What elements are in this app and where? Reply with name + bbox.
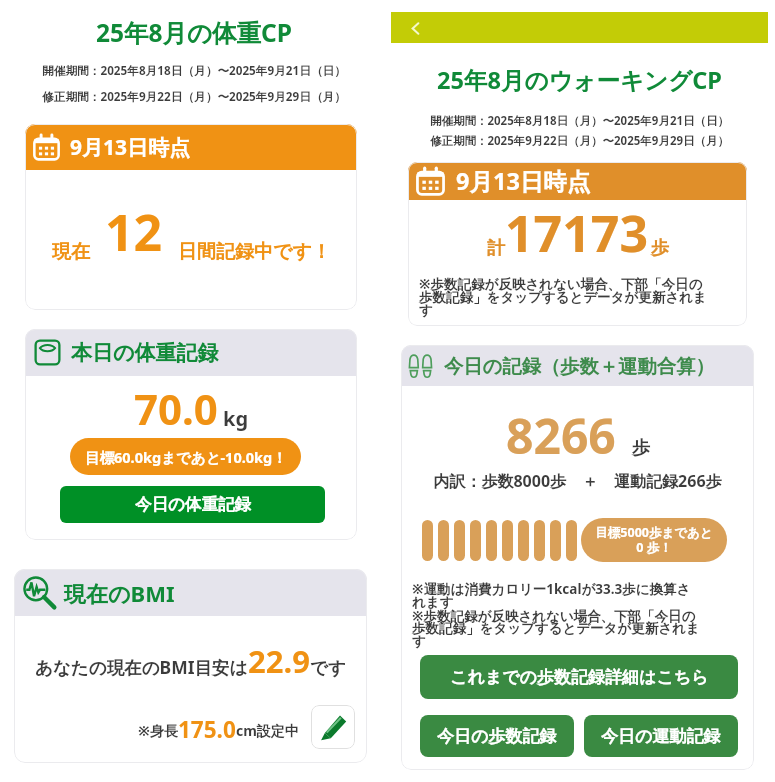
staticText: cm設定中: [236, 721, 299, 740]
staticText: 今日の運動記録: [601, 726, 721, 747]
staticText: 今日の歩数記録: [437, 726, 557, 747]
staticText: 内訳：歩数8000歩 ＋ 運動記録266歩: [401, 470, 754, 492]
staticText: 今日の体重記録: [135, 494, 251, 515]
staticText: 目標60.0kgまであと-10.0kg！: [85, 447, 287, 467]
staticText: 70.0: [134, 380, 218, 437]
staticText: ※運動は消費カロリー1kcalが33.3歩に換算されます ※歩数記録が反映されな…: [412, 580, 704, 650]
staticText: 25年8月のウォーキングCP: [391, 64, 768, 96]
staticText: 日間記録中です！: [178, 240, 331, 264]
staticText: 歩: [651, 237, 669, 260]
staticText: 今日の記録（歩数＋運動合算）: [444, 354, 715, 378]
staticText: 開催期間：2025年8月18日（月）〜2025年9月21日（日）: [5, 62, 383, 78]
staticText: ※歩数記録が反映されない場合、下部「今日の歩数記録」をタップするとデータが更新さ…: [419, 275, 711, 319]
staticText: kg: [223, 405, 249, 432]
staticText: 計: [487, 237, 505, 260]
button[interactable]: 今日の体重記録: [60, 486, 325, 523]
button[interactable]: これまでの歩数記録詳細はこちら: [420, 655, 738, 699]
staticText: 目標5000歩まであと 0 歩！: [581, 524, 727, 556]
staticText: 25年8月の体重CP: [5, 16, 383, 49]
staticText: ※身長: [138, 721, 178, 740]
staticText: 9月13日時点: [70, 133, 191, 162]
staticText: 12: [105, 198, 163, 266]
staticText: 9月13日時点: [456, 165, 591, 197]
button[interactable]: 今日の歩数記録: [420, 715, 574, 757]
staticText: 現在のBMI: [64, 578, 175, 608]
staticText: 22.9: [248, 640, 310, 682]
button[interactable]: 今日の運動記録: [584, 715, 738, 757]
button[interactable]: 目標60.0kgまであと-10.0kg！: [70, 438, 301, 475]
staticText: 現在: [52, 240, 90, 264]
staticText: 修正期間：2025年9月22日（月）〜2025年9月29日（月）: [391, 133, 768, 149]
staticText: 175.0: [178, 714, 236, 745]
staticText: 開催期間：2025年8月18日（月）〜2025年9月21日（日）: [391, 113, 768, 129]
staticText: あなたの現在のBMI目安は: [35, 655, 248, 679]
staticText: 8266: [506, 403, 616, 468]
staticText: です: [310, 657, 346, 679]
staticText: 本日の体重記録: [71, 340, 219, 366]
staticText: これまでの歩数記録詳細はこちら: [450, 667, 709, 688]
button[interactable]: 戻る: [405, 18, 425, 38]
staticText: 歩: [632, 437, 650, 460]
staticText: 修正期間：2025年9月22日（月）〜2025年9月29日（月）: [5, 88, 383, 104]
button[interactable]: 身長を編集: [311, 705, 355, 749]
staticText: 17173: [505, 199, 648, 267]
